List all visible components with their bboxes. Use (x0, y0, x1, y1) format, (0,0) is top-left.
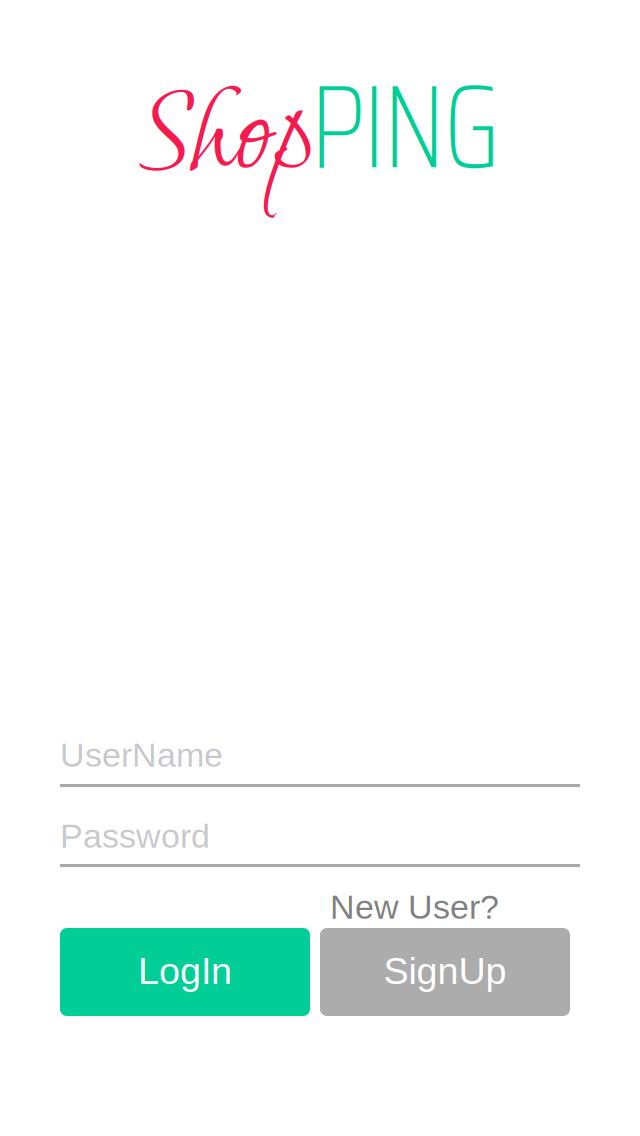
staticText: New User? (330, 888, 499, 926)
button[interactable]: LogIn (60, 928, 310, 1016)
staticText: LogIn (138, 950, 232, 992)
staticText: PING (310, 34, 500, 219)
staticText: Password (60, 817, 210, 855)
button[interactable]: SignUp (320, 928, 570, 1016)
staticText: UserName (60, 736, 223, 774)
staticText: Shop (141, 44, 312, 214)
staticText: SignUp (383, 950, 506, 992)
